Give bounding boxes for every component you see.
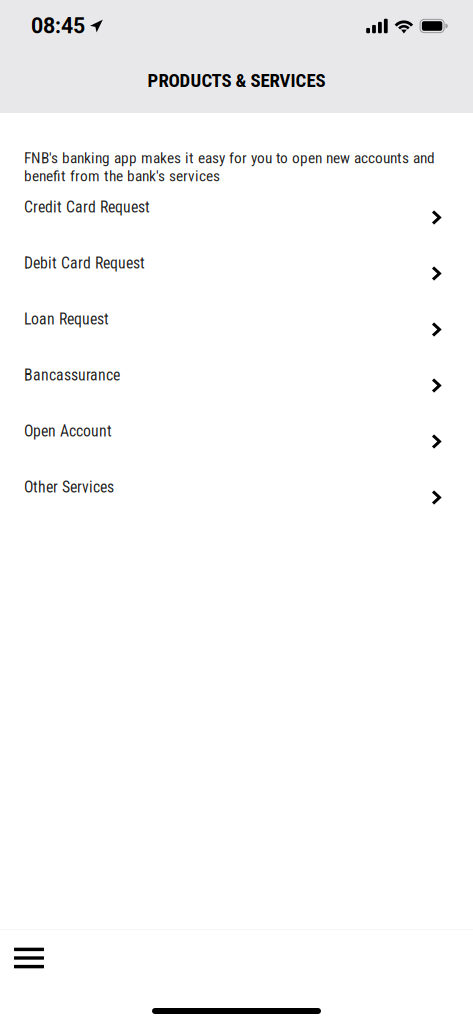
button[interactable]: Bancassurance (0, 353, 473, 409)
staticText: FNB's banking app makes it easy for you … (24, 149, 435, 185)
staticText: PRODUCTS & SERVICES (147, 69, 325, 91)
staticText: Open Account (24, 422, 112, 440)
button[interactable]: Menu (0, 930, 58, 986)
staticText: Credit Card Request (24, 198, 150, 216)
staticText: 08:45 (31, 13, 85, 38)
staticText: Bancassurance (24, 366, 120, 384)
button[interactable]: Loan Request (0, 297, 473, 353)
staticText: Other Services (24, 478, 114, 496)
button[interactable]: Other Services (0, 465, 473, 521)
staticText: Debit Card Request (24, 254, 145, 272)
button[interactable]: Credit Card Request (0, 185, 473, 241)
button[interactable]: Debit Card Request (0, 241, 473, 297)
staticText: Loan Request (24, 310, 109, 328)
button[interactable]: Open Account (0, 409, 473, 465)
